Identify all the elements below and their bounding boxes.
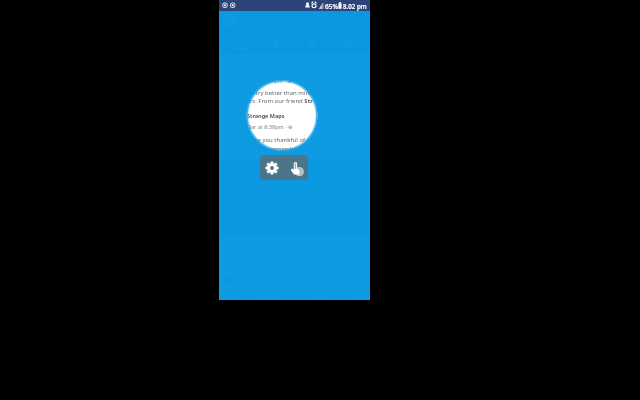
staticText: Strange Maps [247,112,285,119]
staticText: the world and know our brothers. From ou… [219,97,313,105]
button[interactable]: Magnification settings [260,155,284,180]
staticText: living in/or being somewhere [220,145,303,153]
staticText: I bet your country better than mine. Let… [219,89,347,97]
staticText: 8.02 pm [343,2,367,10]
staticText: Mar at 8:38pm · ⊕ [246,123,293,130]
button[interactable]: Switch to touch mode [284,155,308,180]
staticText: 65% [325,2,338,11]
staticText: Mar at 6:21pm · ⊕ [245,77,292,84]
staticText: These maps will make you thankful of [219,136,306,144]
